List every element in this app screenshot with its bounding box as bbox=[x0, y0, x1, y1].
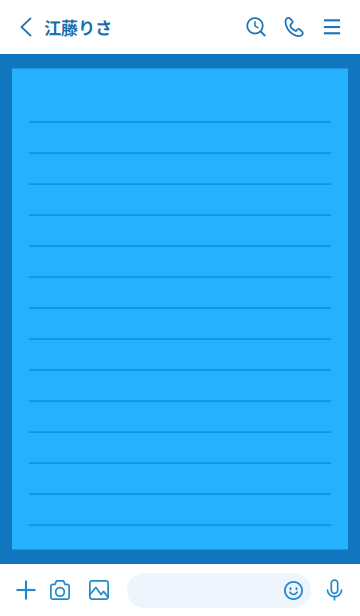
button[interactable]: Add bbox=[7, 568, 45, 611]
button[interactable]: Back bbox=[9, 5, 43, 49]
button[interactable]: Camera bbox=[41, 568, 79, 611]
staticText: 江藤りさ bbox=[44, 14, 112, 40]
button[interactable]: 江藤りさ bbox=[44, 5, 112, 49]
button[interactable]: Voice message bbox=[318, 568, 350, 611]
button[interactable]: Stickers bbox=[278, 573, 308, 608]
button[interactable]: Call bbox=[276, 5, 312, 49]
button[interactable]: Photos bbox=[80, 568, 118, 611]
button[interactable]: Search bbox=[238, 5, 274, 49]
button[interactable]: Menu bbox=[314, 5, 350, 49]
